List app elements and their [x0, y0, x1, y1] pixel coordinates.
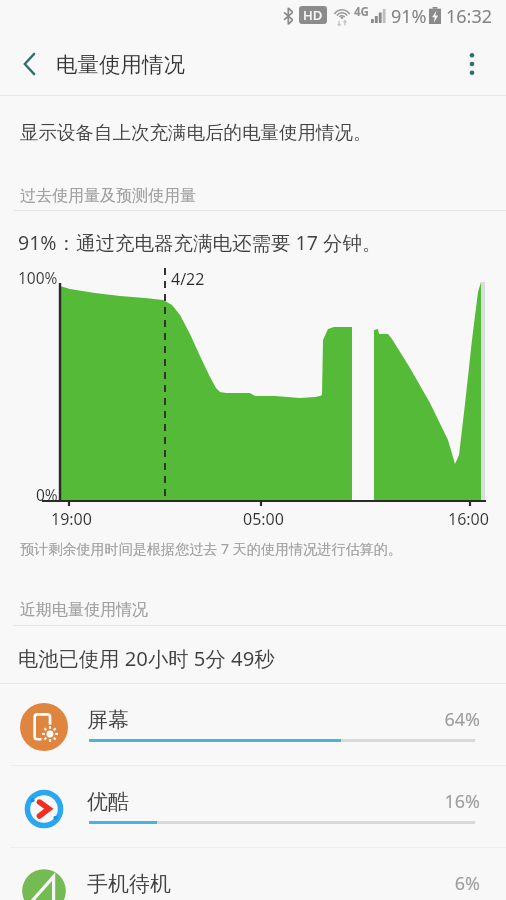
staticText: 4/22	[171, 268, 205, 290]
button[interactable]: 优酷	[0, 766, 506, 848]
staticText: 16%	[375, 789, 480, 814]
button[interactable]: 屏幕	[0, 684, 506, 766]
staticText: 0%	[36, 484, 58, 505]
staticText: 16:00	[448, 508, 489, 530]
staticText: HD	[303, 6, 323, 24]
staticText: 100%	[18, 267, 58, 288]
staticText: 过去使用量及预测使用量	[20, 186, 196, 206]
button[interactable]: 手机待机	[0, 848, 506, 900]
staticText: 19:00	[51, 508, 92, 530]
staticText: 手机待机	[87, 871, 171, 897]
staticText: 4G	[354, 4, 369, 20]
staticText: 64%	[375, 707, 480, 732]
staticText: 91%	[391, 4, 427, 29]
staticText: 电量使用情况	[56, 51, 185, 78]
staticText: 显示设备自上次充满电后的电量使用情况。	[20, 121, 372, 144]
staticText: 91%：通过充电器充满电还需要 17 分钟。	[18, 229, 382, 256]
button[interactable]: Back	[4, 38, 56, 90]
staticText: 预计剩余使用时间是根据您过去 7 天的使用情况进行估算的。	[20, 539, 402, 558]
staticText: 6%	[375, 871, 480, 896]
staticText: 16:32	[446, 4, 493, 29]
staticText: 近期电量使用情况	[20, 600, 148, 620]
button[interactable]: More options	[446, 38, 498, 90]
staticText: 优酷	[87, 789, 129, 815]
staticText: 05:00	[243, 508, 284, 530]
staticText: 屏幕	[87, 707, 129, 733]
staticText: 电池已使用 20小时 5分 49秒	[18, 644, 275, 672]
